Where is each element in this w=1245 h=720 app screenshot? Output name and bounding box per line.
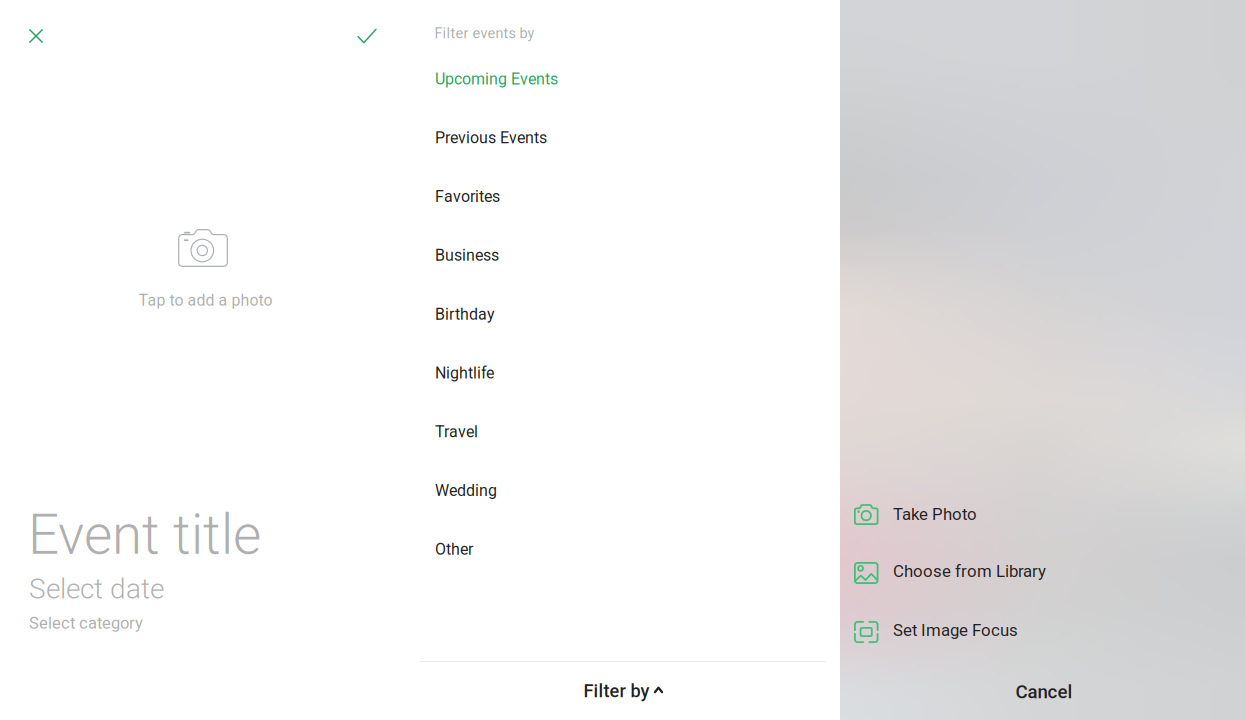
button[interactable]: Previous Events — [405, 116, 840, 160]
staticText: Other — [435, 540, 473, 559]
button[interactable]: Take Photo — [840, 504, 1245, 554]
button[interactable]: Event title — [28, 507, 373, 563]
staticText: Birthday — [435, 305, 495, 324]
button[interactable]: Save — [344, 13, 390, 59]
button[interactable]: Cancel — [840, 681, 1245, 720]
button[interactable]: Filter by — [405, 662, 840, 720]
button[interactable]: Business — [405, 233, 840, 277]
staticText: Filter by — [583, 680, 649, 702]
staticText: Event title — [28, 503, 261, 567]
staticText: Travel — [435, 422, 478, 441]
staticText: Tap to add a photo — [138, 291, 272, 310]
staticText: Take Photo — [893, 504, 977, 524]
staticText: Nightlife — [435, 364, 494, 382]
button[interactable]: Wedding — [405, 469, 840, 513]
button[interactable]: Favorites — [405, 175, 840, 219]
staticText: Favorites — [435, 187, 500, 206]
button[interactable]: Select category — [29, 608, 374, 638]
button[interactable]: Travel — [405, 410, 840, 454]
button[interactable]: Upcoming Events — [405, 57, 840, 101]
staticText: Select date — [29, 573, 164, 605]
staticText: Filter events by — [434, 25, 534, 42]
staticText: Cancel — [1015, 681, 1072, 703]
staticText: Wedding — [435, 481, 497, 500]
staticText: Set Image Focus — [893, 620, 1018, 640]
button[interactable]: Birthday — [405, 292, 840, 336]
button[interactable]: Choose from Library — [840, 562, 1245, 612]
button[interactable]: Nightlife — [405, 351, 840, 395]
staticText: Previous Events — [435, 128, 547, 147]
staticText: Business — [435, 246, 499, 265]
staticText: Upcoming Events — [435, 70, 558, 88]
staticText: Choose from Library — [893, 561, 1046, 581]
button[interactable]: Select date — [29, 571, 374, 607]
button[interactable]: Set Image Focus — [840, 621, 1245, 671]
button[interactable]: Tap to add a photo — [123, 229, 323, 325]
staticText: Select category — [29, 613, 143, 633]
button[interactable]: Close — [13, 13, 59, 59]
button[interactable]: Other — [405, 527, 840, 571]
